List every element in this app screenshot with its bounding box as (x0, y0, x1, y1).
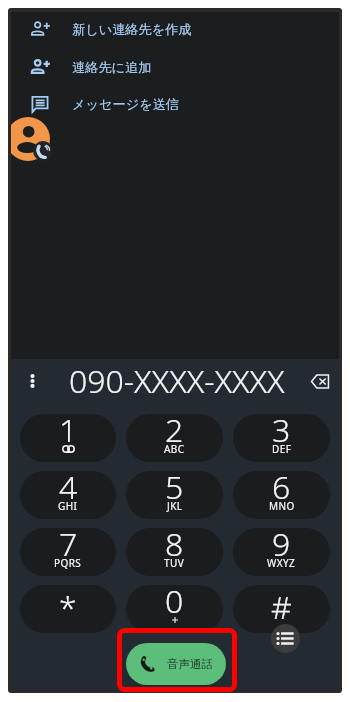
staticText: 090-XXXX-XXXX (69, 359, 285, 403)
staticText: 1 (59, 414, 78, 452)
staticText: 5 (165, 471, 184, 509)
button[interactable]: 5 (126, 471, 223, 519)
staticText: 6 (272, 471, 291, 509)
staticText: 8 (165, 528, 184, 566)
button[interactable]: メッセージを送信 (11, 86, 339, 122)
button[interactable]: More options (19, 368, 45, 394)
staticText: 連絡先に追加 (72, 59, 152, 76)
staticText: 4 (59, 471, 78, 509)
button[interactable]: * (20, 585, 116, 633)
button[interactable]: 4 (20, 471, 116, 519)
button[interactable]: Options (271, 624, 300, 653)
button[interactable]: 0 (126, 585, 223, 633)
staticText: GHI (58, 499, 78, 513)
button[interactable]: 7 (20, 528, 116, 576)
button[interactable]: 音声通話 (126, 643, 226, 685)
button[interactable]: 6 (233, 471, 330, 519)
button[interactable]: 連絡先に追加 (11, 49, 339, 85)
staticText: 7 (59, 528, 78, 566)
button[interactable]: 9 (233, 528, 330, 576)
staticText: * (59, 585, 77, 629)
button[interactable]: 1 (20, 414, 116, 462)
staticText: DEF (272, 442, 292, 456)
staticText: MNO (269, 499, 295, 513)
button[interactable]: Backspace (305, 366, 335, 396)
staticText: メッセージを送信 (72, 96, 180, 113)
staticText: JKL (167, 499, 183, 513)
staticText: 3 (272, 414, 291, 452)
staticText: 0 (165, 585, 184, 623)
staticText: WXYZ (267, 556, 296, 570)
button[interactable]: 2 (126, 414, 223, 462)
button[interactable]: 3 (233, 414, 330, 462)
staticText: PQRS (54, 556, 82, 570)
staticText: 音声通話 (167, 657, 213, 671)
staticText: 新しい連絡先を作成 (72, 21, 192, 38)
button[interactable]: # (233, 585, 330, 633)
button[interactable]: 8 (126, 528, 223, 576)
staticText: 2 (165, 414, 184, 452)
staticText: 9 (272, 528, 291, 566)
button[interactable]: 新しい連絡先を作成 (11, 12, 339, 47)
staticText: # (271, 585, 292, 629)
staticText: ABC (164, 442, 185, 456)
staticText: TUV (164, 556, 185, 570)
